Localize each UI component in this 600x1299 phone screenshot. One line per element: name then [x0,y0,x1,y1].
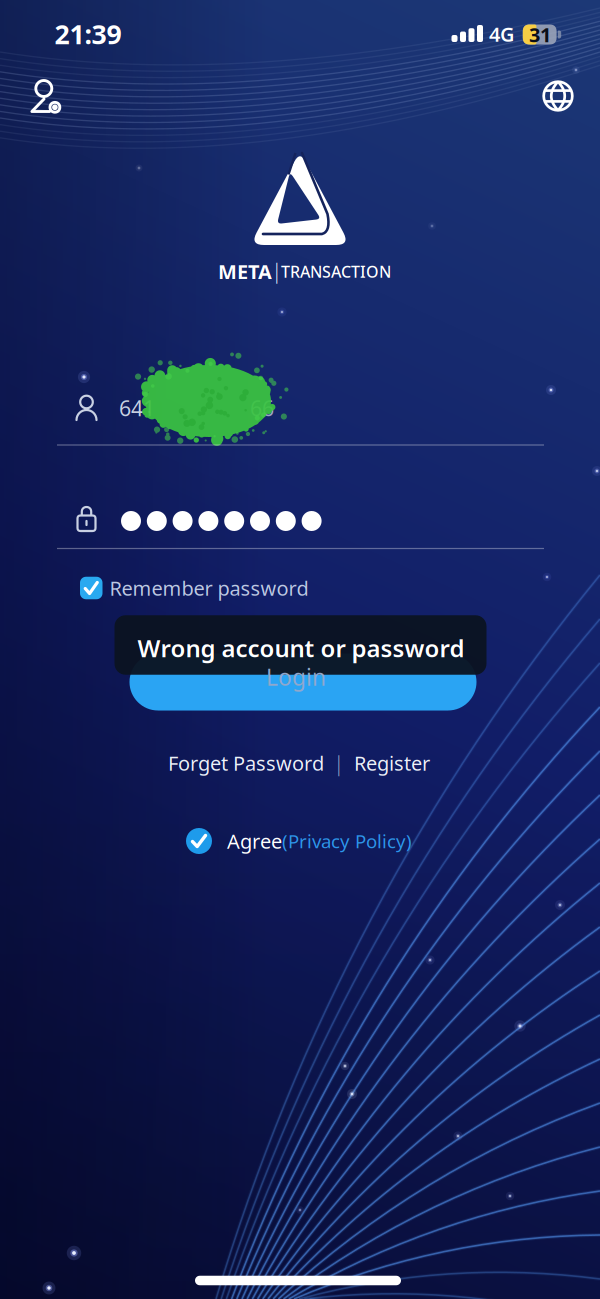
staticText: Forget Password [168,750,324,776]
staticText: 641 [119,394,155,422]
staticText: 21:39 [54,16,121,52]
staticText: Agree [227,828,282,854]
button[interactable]: Language [535,73,581,119]
staticText: Remember password [109,575,308,601]
staticText: META [218,258,272,285]
staticText: (Privacy Policy) [282,829,412,853]
staticText: 4G [489,21,515,47]
button[interactable]: Password [57,486,544,552]
button[interactable]: Account [23,75,67,119]
staticText: 66 [250,394,274,422]
staticText: 31 [529,21,551,48]
button[interactable]: (Privacy Policy) [282,829,412,853]
staticText: TRANSACTION [281,261,391,282]
button[interactable]: Login [129,653,476,710]
staticText: Login [266,662,326,692]
button[interactable]: Forget Password [168,750,324,776]
button[interactable]: Account number [57,373,544,439]
staticText: Register [354,750,430,776]
button[interactable]: Remember password [80,575,308,601]
button[interactable]: Agree [186,828,282,854]
staticText: | [333,749,345,777]
staticText: | [271,256,283,285]
button[interactable]: Register [354,750,430,776]
staticText: Wrong account or password [137,632,464,664]
